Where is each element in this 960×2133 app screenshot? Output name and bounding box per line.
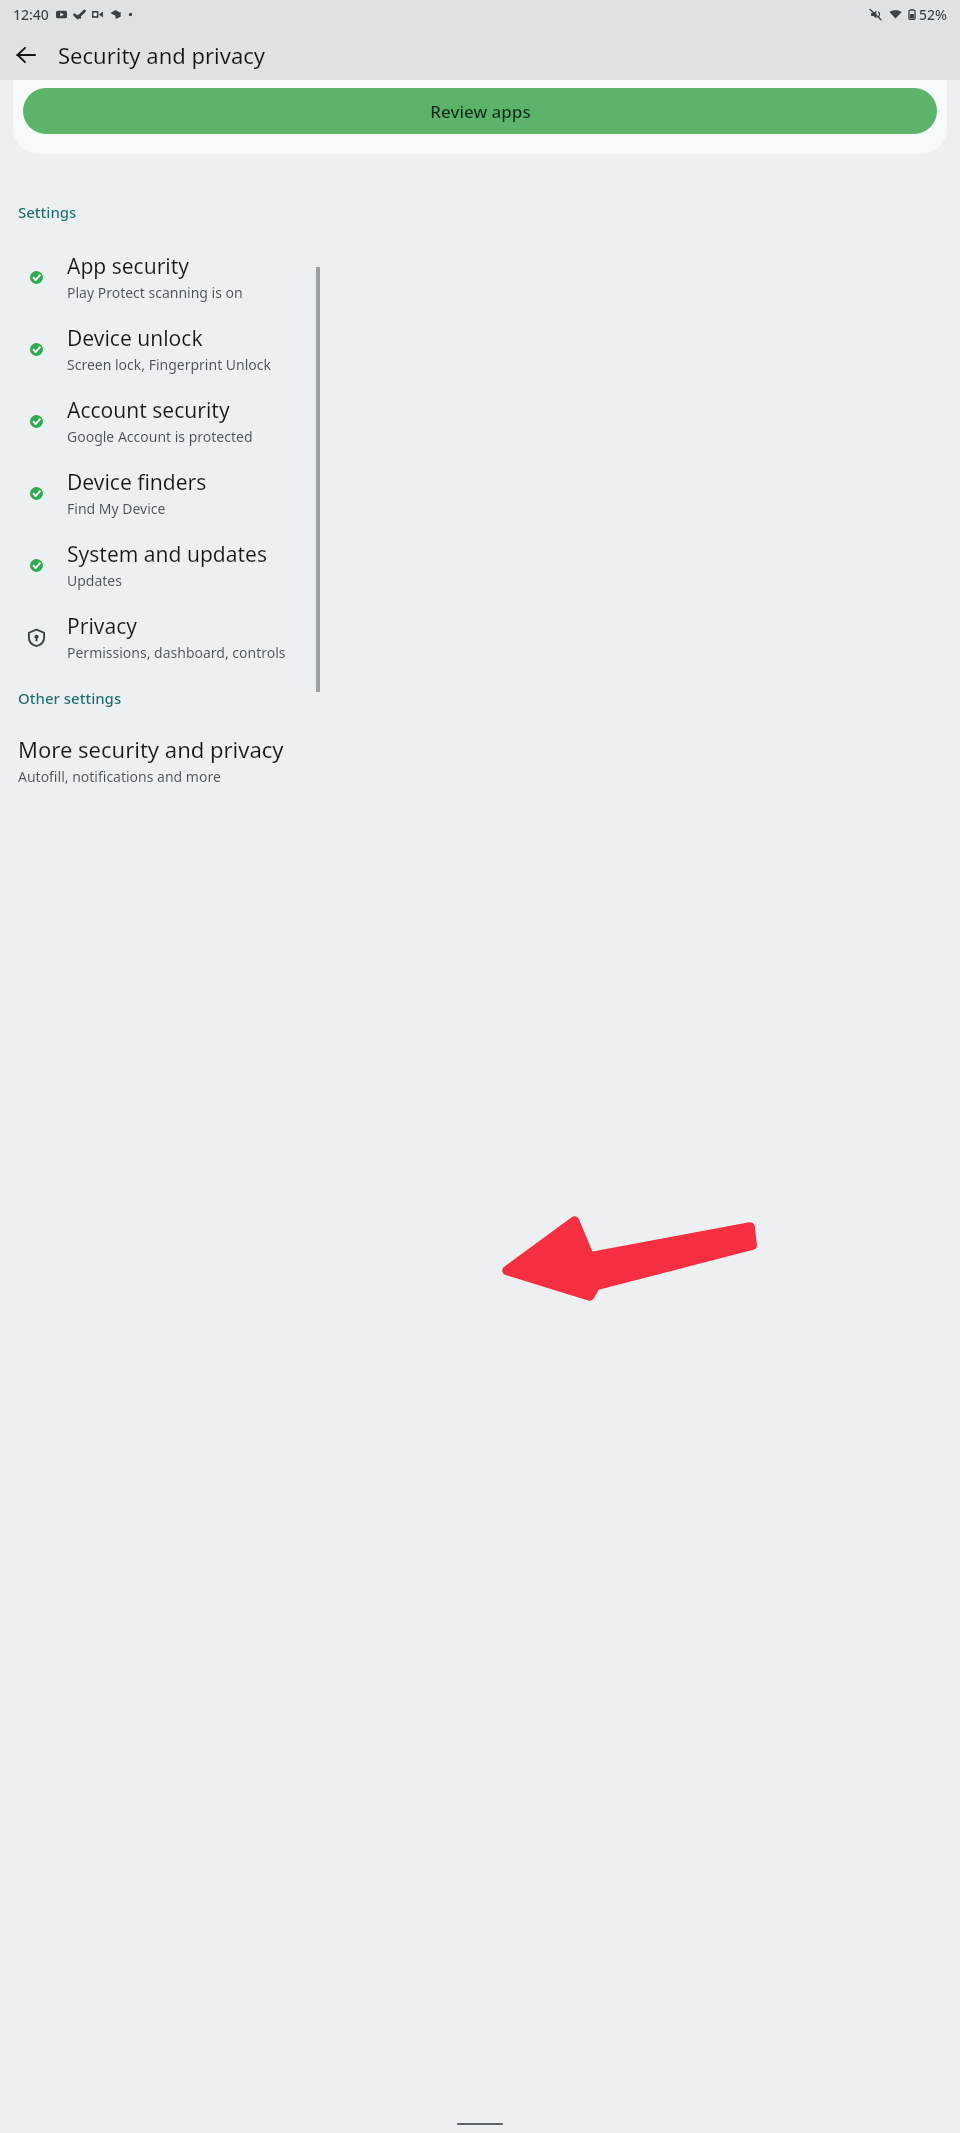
staticText: Privacy — [67, 612, 138, 641]
button[interactable]: Privacy — [0, 602, 960, 674]
button[interactable]: Review apps — [23, 88, 937, 134]
button[interactable]: Device unlock — [0, 314, 960, 386]
staticText: 12:40 — [13, 5, 49, 24]
staticText: Security and privacy — [58, 40, 266, 70]
staticText: Updates — [67, 571, 122, 590]
staticText: Settings — [18, 202, 77, 222]
staticText: Device finders — [67, 468, 207, 497]
staticText: More security and privacy — [18, 734, 284, 764]
staticText: Account security — [67, 396, 230, 425]
staticText: Google Account is protected — [67, 427, 253, 446]
staticText: Permissions, dashboard, controls — [67, 643, 286, 662]
staticText: Find My Device — [67, 499, 166, 518]
staticText: Device unlock — [67, 324, 203, 353]
staticText: System and updates — [67, 540, 268, 569]
button[interactable]: Back — [4, 33, 48, 77]
staticText: Play Protect scanning is on — [67, 283, 243, 302]
staticText: Other settings — [18, 688, 122, 708]
button[interactable]: Device finders — [0, 458, 960, 530]
staticText: Review apps — [430, 100, 531, 123]
button[interactable]: System and updates — [0, 530, 960, 602]
staticText: App security — [67, 252, 190, 281]
button[interactable]: App security — [0, 242, 960, 314]
button[interactable]: More security and privacy — [0, 730, 960, 796]
button[interactable]: Account security — [0, 386, 960, 458]
staticText: Autofill, notifications and more — [18, 767, 221, 786]
staticText: Screen lock, Fingerprint Unlock — [67, 355, 271, 374]
staticText: 52% — [919, 5, 947, 24]
